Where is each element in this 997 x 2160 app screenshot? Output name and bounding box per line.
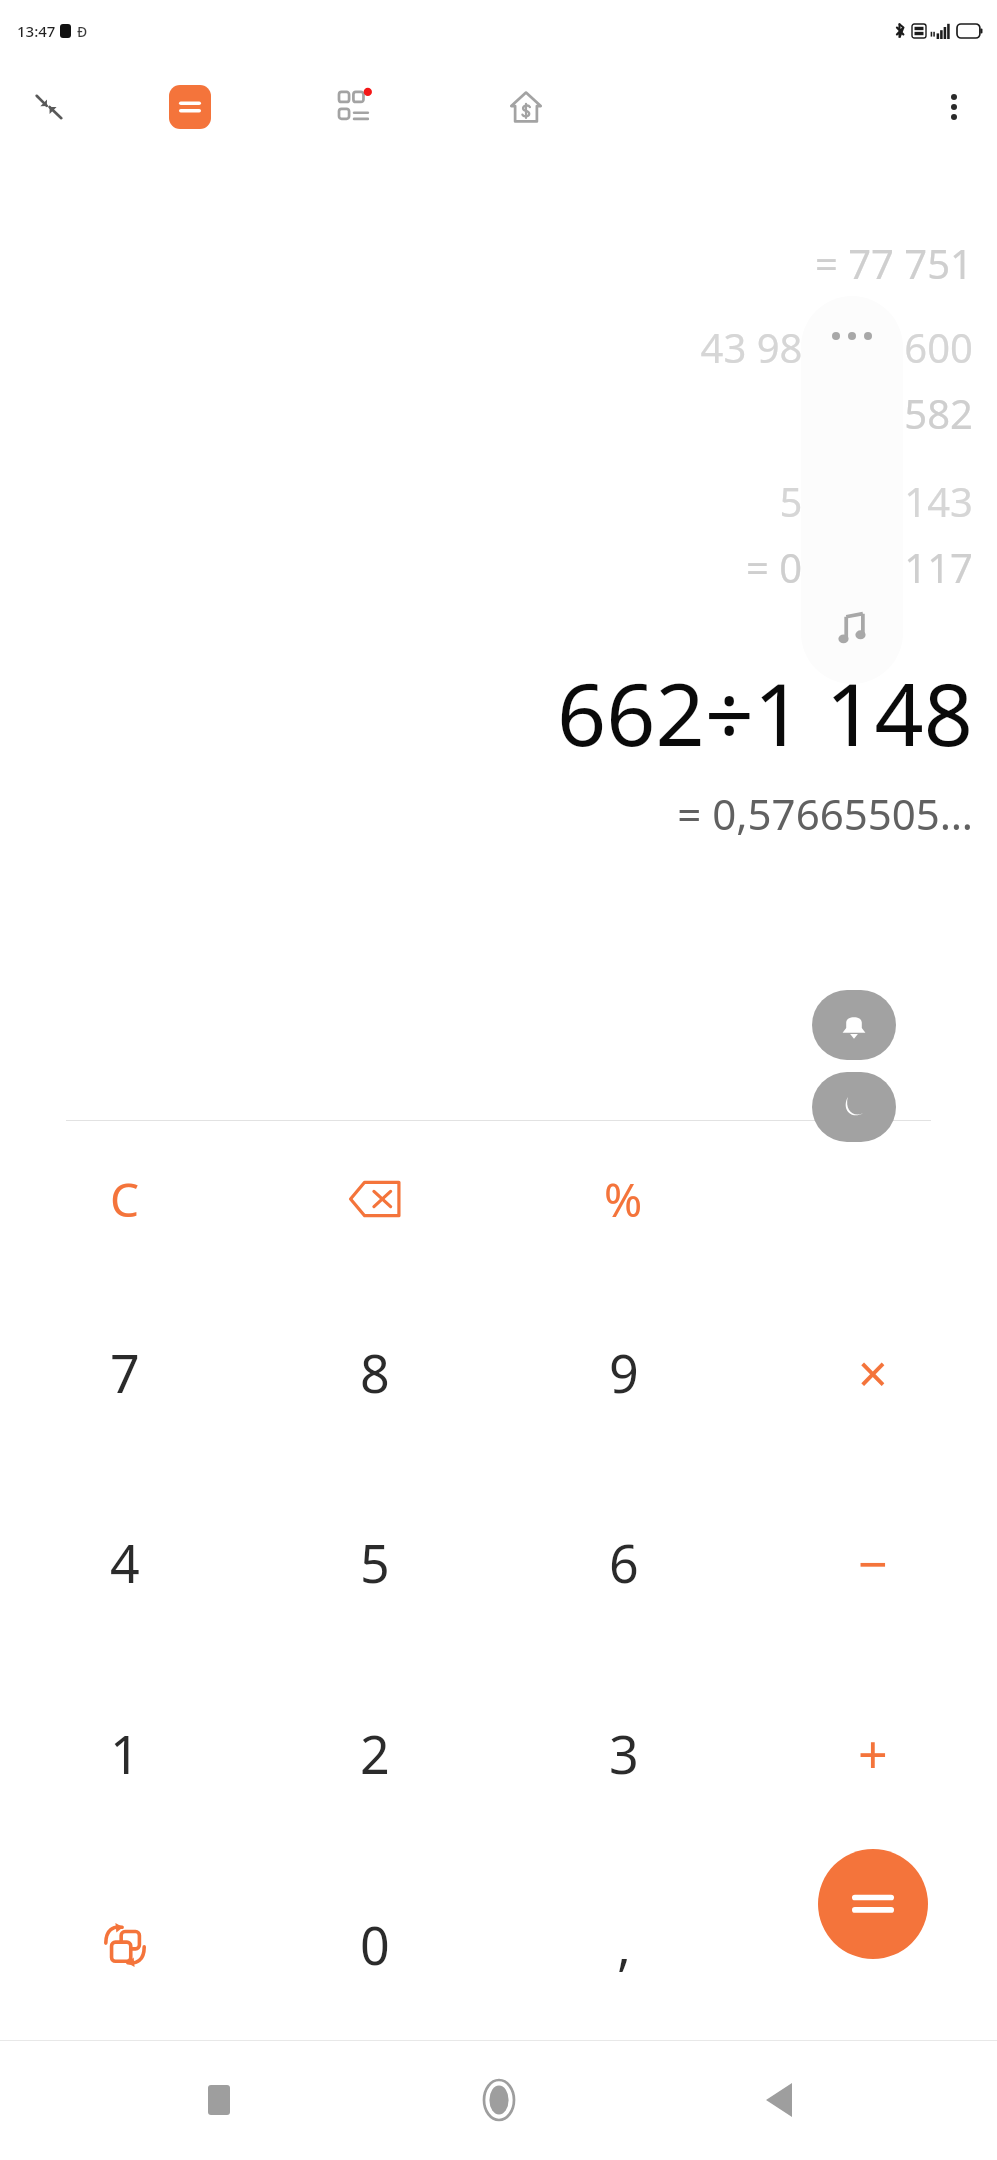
- button[interactable]: ,: [499, 1849, 748, 2040]
- button[interactable]: Recents: [174, 2055, 264, 2145]
- button[interactable]: Backspace: [250, 1121, 499, 1277]
- staticText: = 0,57665505…: [677, 785, 973, 842]
- staticText: ,: [617, 1909, 631, 1980]
- staticText: 7: [110, 1337, 140, 1408]
- staticText: 3: [609, 1718, 639, 1789]
- staticText: 0: [360, 1909, 390, 1980]
- button[interactable]: Do not disturb: [812, 1072, 896, 1142]
- button[interactable]: 1: [0, 1658, 250, 1849]
- button[interactable]: Clear: [0, 1121, 250, 1277]
- button[interactable]: +: [748, 1658, 997, 1849]
- button[interactable]: Floating window: [801, 296, 903, 684]
- staticText: 8: [360, 1337, 390, 1408]
- button[interactable]: Equals mode: [163, 80, 217, 134]
- button[interactable]: 8: [250, 1277, 499, 1467]
- staticText: Đ: [77, 22, 88, 41]
- button[interactable]: −: [748, 1467, 997, 1658]
- staticText: ×: [858, 1337, 888, 1408]
- button[interactable]: 5: [250, 1467, 499, 1658]
- staticText: 9: [609, 1337, 639, 1408]
- staticText: −: [858, 1527, 888, 1598]
- button[interactable]: Collapse: [22, 80, 76, 134]
- button[interactable]: Mortgage: [497, 78, 555, 136]
- staticText: 4: [110, 1527, 140, 1598]
- staticText: %: [604, 1168, 643, 1231]
- button[interactable]: 4: [0, 1467, 250, 1658]
- button[interactable]: 0: [250, 1849, 499, 2040]
- staticText: = 0,5965117: [745, 540, 973, 594]
- staticText: +: [858, 1718, 888, 1789]
- staticText: 2: [360, 1718, 390, 1789]
- button[interactable]: Equals: [818, 1849, 928, 1959]
- staticText: C: [110, 1168, 140, 1231]
- button[interactable]: 6: [499, 1467, 748, 1658]
- button[interactable]: ×: [748, 1277, 997, 1467]
- staticText: 662÷1 148: [557, 654, 973, 771]
- button[interactable]: More options: [928, 81, 980, 133]
- button[interactable]: 2: [250, 1658, 499, 1849]
- staticText: = 74 582: [814, 386, 973, 440]
- staticText: 13:47: [17, 21, 56, 41]
- staticText: 43 982+30 600: [700, 320, 973, 374]
- button[interactable]: Back: [734, 2055, 824, 2145]
- button[interactable]: 3: [499, 1658, 748, 1849]
- button[interactable]: Notifications: [812, 990, 896, 1060]
- button[interactable]: Percent: [499, 1121, 748, 1277]
- staticText: = 77 751: [814, 236, 973, 290]
- button[interactable]: 9: [499, 1277, 748, 1467]
- button[interactable]: Convert units: [0, 1849, 250, 2040]
- staticText: 5: [360, 1527, 390, 1598]
- staticText: 1: [110, 1718, 140, 1789]
- button[interactable]: 7: [0, 1277, 250, 1467]
- button[interactable]: Home: [454, 2055, 544, 2145]
- staticText: 513+1 143: [779, 474, 973, 528]
- staticText: 6: [609, 1527, 639, 1598]
- button[interactable]: Categories: [328, 78, 386, 136]
